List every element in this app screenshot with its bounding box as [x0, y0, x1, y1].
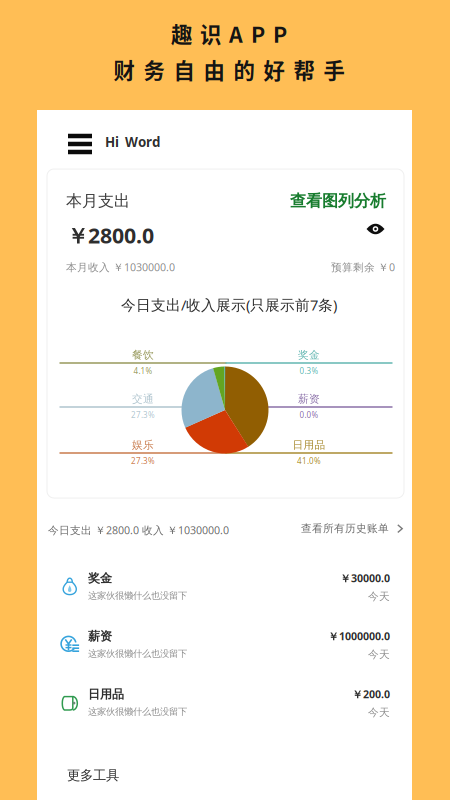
staticText: 薪资: [298, 392, 320, 405]
staticText: 薪资: [88, 629, 112, 644]
staticText: 日用品: [88, 687, 124, 702]
staticText: 这家伙很懒什么也没留下: [88, 590, 187, 601]
staticText: 财务自由的好帮手: [113, 54, 344, 85]
staticText: 0.0%: [299, 410, 318, 420]
staticText: 奖金: [88, 571, 112, 586]
staticText: 今天: [368, 706, 390, 719]
staticText: 0.3%: [299, 366, 318, 376]
button[interactable]: Menu: [68, 131, 98, 157]
staticText: 预算剩余 ￥0: [331, 260, 395, 274]
staticText: ￥2800.0: [67, 221, 154, 249]
staticText: 娱乐: [132, 438, 154, 451]
staticText: 日用品: [292, 438, 325, 451]
staticText: 查看所有历史账单: [301, 522, 389, 535]
staticText: 这家伙很懒什么也没留下: [88, 648, 187, 659]
button[interactable]: 日用品: [37, 673, 412, 731]
staticText: 交通: [132, 392, 154, 405]
staticText: ￥200.0: [352, 687, 390, 701]
button[interactable]: 奖金: [37, 557, 412, 615]
staticText: 更多工具: [67, 767, 119, 783]
staticText: 今日支出 ￥2800.0 收入 ￥1030000.0: [48, 523, 229, 537]
staticText: 本月收入 ￥1030000.0: [66, 260, 175, 274]
staticText: 41.0%: [297, 456, 321, 466]
button[interactable]: 薪资: [37, 615, 412, 673]
staticText: ￥1000000.0: [328, 629, 390, 643]
staticText: 本月支出: [66, 191, 130, 211]
button[interactable]: Hide amount: [366, 221, 385, 237]
staticText: 餐饮: [132, 348, 154, 361]
button[interactable]: 查看图列分析: [290, 191, 386, 211]
staticText: 今日支出/收入展示(只展示前7条): [121, 295, 337, 314]
staticText: 这家伙很懒什么也没留下: [88, 706, 187, 717]
button[interactable]: 查看所有历史账单: [301, 522, 403, 535]
staticText: Hi Word: [105, 133, 160, 151]
staticText: 趣识APP: [171, 18, 287, 49]
staticText: 27.3%: [131, 410, 155, 420]
staticText: 奖金: [298, 348, 320, 361]
staticText: 4.1%: [133, 366, 152, 376]
staticText: 今天: [368, 590, 390, 603]
staticText: 今天: [368, 648, 390, 661]
staticText: 27.3%: [131, 456, 155, 466]
staticText: 查看图列分析: [290, 191, 386, 211]
staticText: ￥30000.0: [340, 571, 390, 585]
